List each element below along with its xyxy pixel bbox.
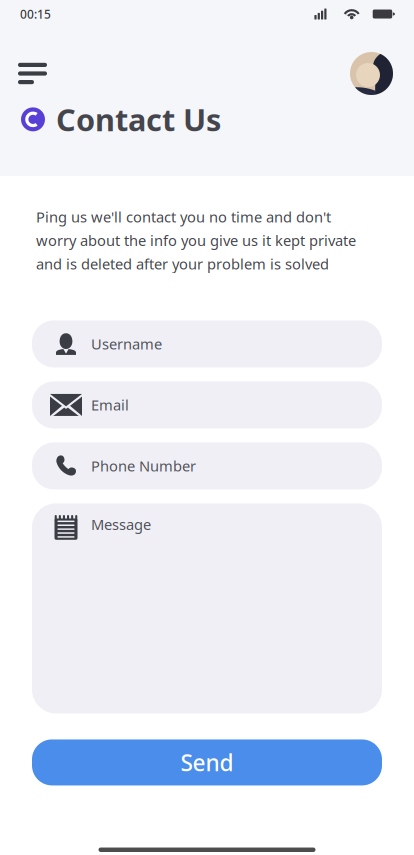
button[interactable]: Username	[32, 320, 382, 367]
button[interactable]: Menu	[12, 55, 53, 92]
staticText: Send	[180, 747, 233, 777]
staticText: Email	[91, 395, 129, 415]
button[interactable]: Send	[32, 739, 382, 785]
staticText: 00:15	[20, 6, 51, 22]
staticText: Username	[91, 334, 162, 354]
button[interactable]: Message	[32, 503, 382, 713]
staticText: Ping us we'll contact you no time and do…	[36, 207, 356, 273]
staticText: Contact Us	[56, 99, 221, 140]
button[interactable]: Email	[32, 381, 382, 428]
staticText: Phone Number	[91, 456, 196, 476]
button[interactable]: Phone Number	[32, 442, 382, 489]
button[interactable]: Profile	[350, 52, 393, 95]
staticText: Message	[91, 515, 151, 534]
